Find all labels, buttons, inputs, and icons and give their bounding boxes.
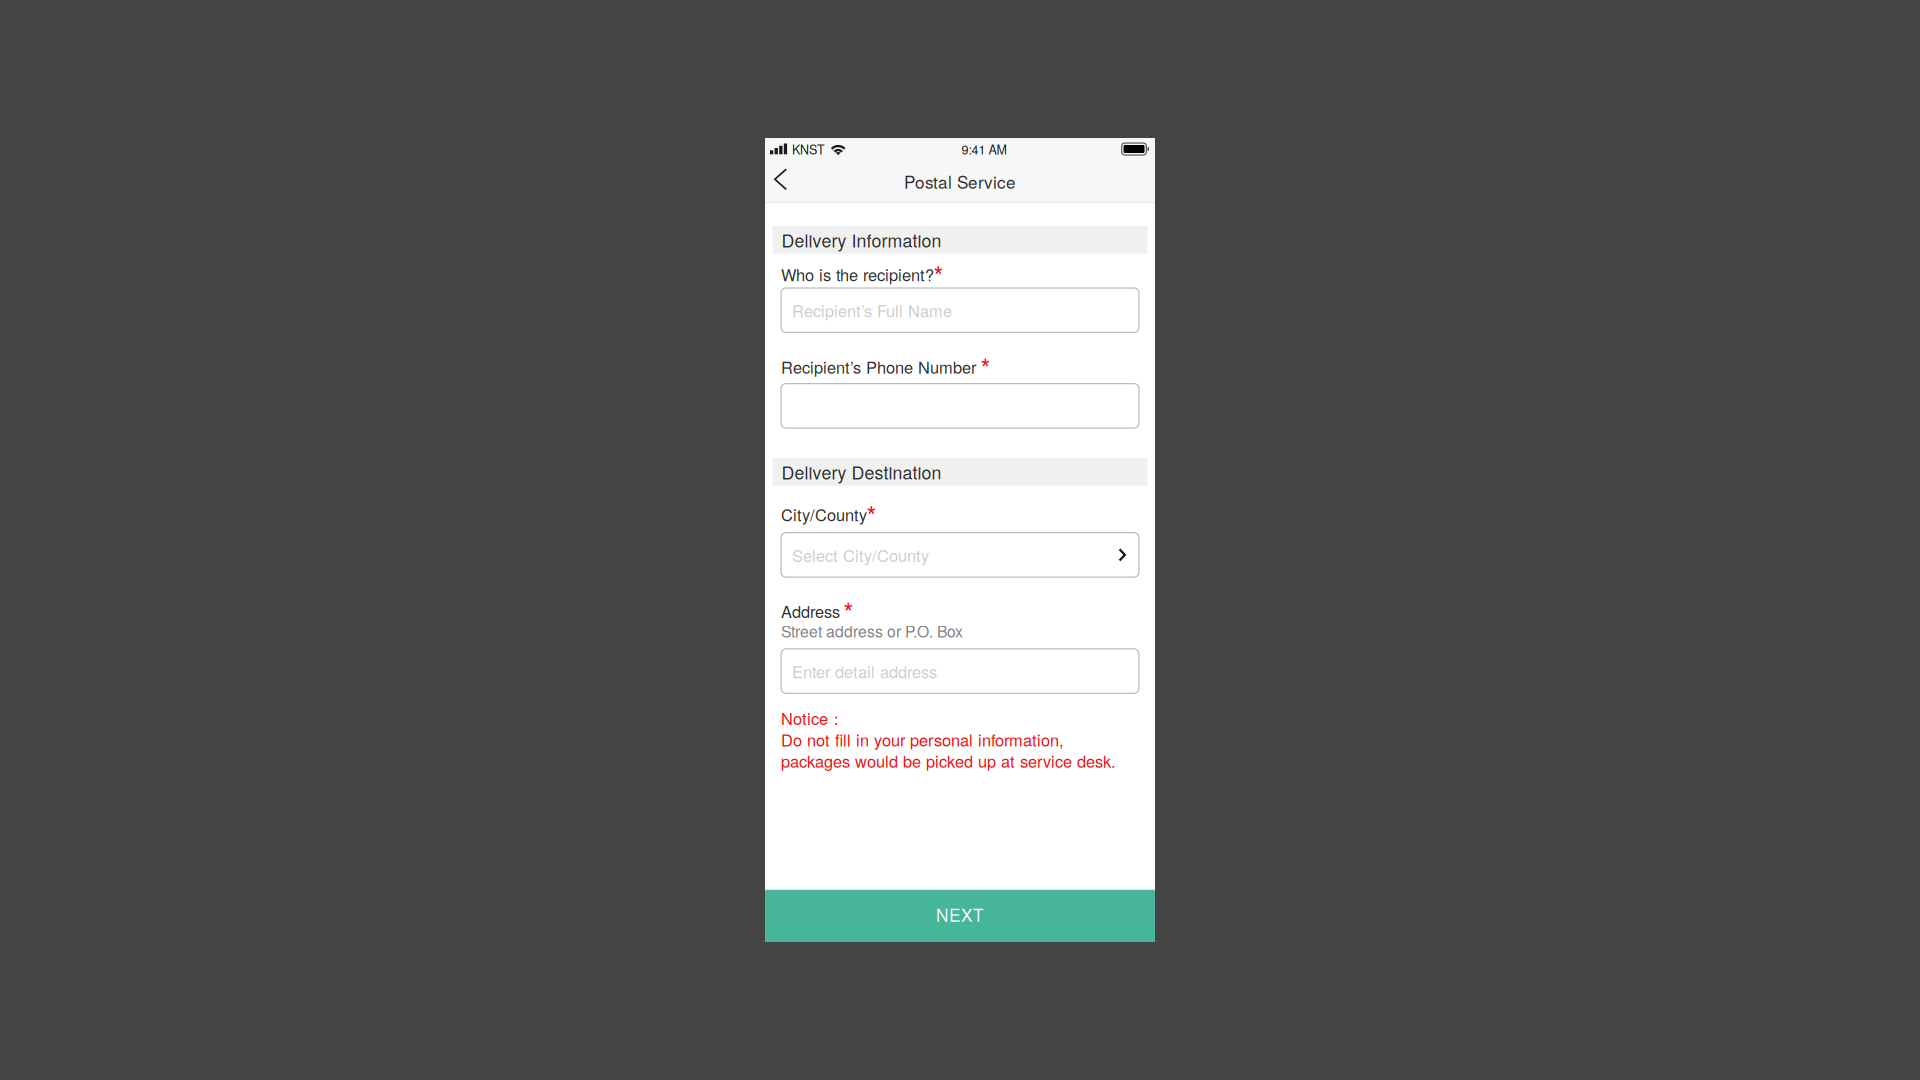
staticText: Notice： — [781, 706, 844, 730]
button[interactable]: Select City/County — [781, 533, 1139, 577]
staticText: KNST — [792, 140, 825, 158]
button[interactable]: Back — [765, 160, 818, 202]
staticText: * — [980, 348, 990, 385]
staticText: * — [933, 256, 943, 292]
staticText: Who is the recipient? — [781, 262, 934, 286]
staticText: Do not fill in your personal information… — [781, 728, 1064, 751]
button[interactable]: Recipient’s Full Name — [781, 288, 1139, 332]
staticText: NEXT — [936, 902, 984, 927]
staticText: Address — [781, 599, 840, 623]
staticText: Recipient’s Full Name — [792, 298, 952, 322]
button[interactable]: NEXT — [765, 890, 1155, 942]
staticText: * — [843, 593, 853, 629]
staticText: Recipient’s Phone Number — [781, 355, 976, 378]
staticText: packages would be picked up at service d… — [781, 749, 1116, 772]
button[interactable] — [781, 384, 1139, 428]
button[interactable]: Enter detail address — [781, 649, 1139, 693]
staticText: Delivery Information — [781, 227, 941, 252]
staticText: Street address or P.O. Box — [781, 619, 963, 642]
staticText: * — [866, 496, 876, 532]
staticText: 9:41 AM — [961, 140, 1006, 158]
staticText: Postal Service — [904, 169, 1016, 193]
staticText: City/County — [781, 502, 867, 526]
staticText: Select City/County — [792, 543, 929, 567]
staticText: Enter detail address — [792, 659, 937, 683]
staticText: Delivery Destination — [781, 459, 941, 485]
